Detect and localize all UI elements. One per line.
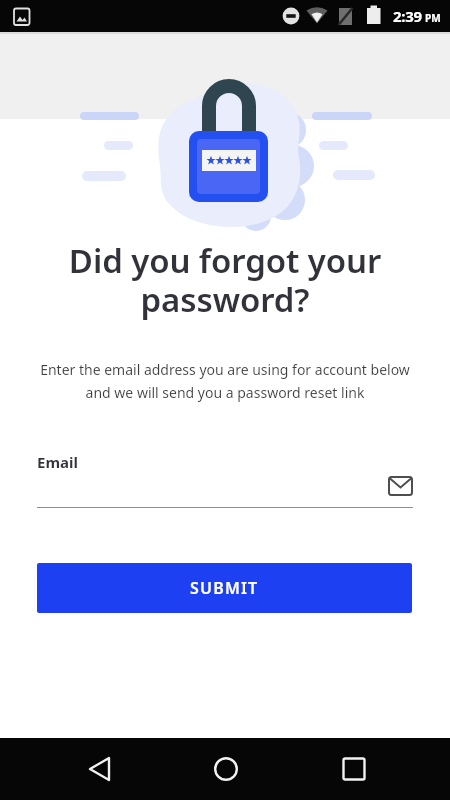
staticText: SUBMIT: [190, 577, 259, 599]
button[interactable]: [68, 738, 132, 800]
button[interactable]: Email: [37, 452, 413, 508]
staticText: Did you forgot your password?: [0, 238, 450, 322]
staticText: PM: [425, 11, 441, 25]
staticText: Enter the email address you are using fo…: [0, 360, 450, 402]
button[interactable]: SUBMIT: [37, 563, 412, 613]
button[interactable]: [322, 738, 386, 800]
staticText: Email: [37, 452, 78, 472]
button[interactable]: [194, 738, 258, 800]
staticText: 2:39: [393, 6, 422, 26]
